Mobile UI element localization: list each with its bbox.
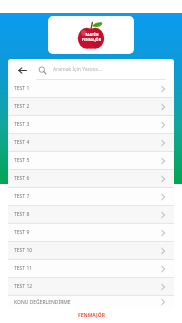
button[interactable]: TEST 7 (8, 188, 174, 205)
staticText: FENMAJÖR (78, 312, 105, 319)
button[interactable]: TEST 3 (8, 116, 174, 133)
staticText: FENMAJÖR (82, 37, 101, 42)
staticText: TEST 10 (14, 247, 33, 254)
button[interactable]: TEST 11 (8, 260, 174, 277)
staticText: TEST 8 (14, 211, 30, 218)
other: Search (36, 64, 48, 76)
staticText: TEST 2 (14, 103, 30, 110)
button[interactable]: TEST 5 (8, 152, 174, 169)
button[interactable]: TEST 10 (8, 242, 174, 259)
staticText: KONU DEĞERLENDİRME (14, 299, 71, 306)
staticText: TEST 5 (14, 157, 30, 164)
staticText: TEST 9 (14, 229, 30, 236)
staticText: TEST 12 (14, 283, 33, 290)
button[interactable]: Back (14, 62, 30, 78)
button[interactable]: TEST 1 (8, 80, 174, 97)
button[interactable]: TEST 8 (8, 206, 174, 223)
staticText: MATİH (85, 32, 99, 37)
staticText: TEST 11 (14, 265, 33, 272)
button[interactable]: KONU DEĞERLENDİRME (8, 296, 174, 308)
staticText: TEST 7 (14, 193, 30, 200)
staticText: TEST 3 (14, 121, 30, 128)
staticText: TEST 4 (14, 139, 30, 146)
button[interactable]: TEST 9 (8, 224, 174, 241)
staticText: Aramak İçin Yazınız... (53, 66, 102, 73)
button[interactable]: MATİH (48, 16, 134, 54)
staticText: TEST 6 (14, 175, 30, 182)
button[interactable]: TEST 2 (8, 98, 174, 115)
staticText: TEST 1 (14, 85, 30, 92)
button[interactable]: TEST 12 (8, 278, 174, 295)
button[interactable]: TEST 6 (8, 170, 174, 187)
button[interactable]: TEST 4 (8, 134, 174, 151)
